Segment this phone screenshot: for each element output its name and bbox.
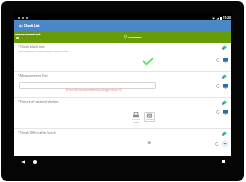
other: Edit <box>222 100 227 105</box>
button[interactable]: * <box>14 43 231 71</box>
staticText: General Checklist Test <box>15 33 41 36</box>
button[interactable]: Back <box>18 157 28 167</box>
button[interactable]: * <box>14 72 231 97</box>
other: History <box>216 84 220 88</box>
button[interactable]: History <box>215 57 221 63</box>
button[interactable]: * <box>14 98 231 128</box>
button[interactable]: Edit <box>221 130 227 136</box>
button[interactable]: Comments <box>222 57 228 63</box>
other: History <box>216 58 220 62</box>
other: Comments <box>223 110 228 115</box>
other: Edit <box>222 45 227 50</box>
staticText: Check List <box>24 24 40 28</box>
staticText: Picture of stocked shelves <box>20 100 59 104</box>
staticText: SD Card Photo <box>132 118 140 124</box>
button[interactable]: Edit <box>221 44 227 50</box>
staticText: * <box>18 131 20 135</box>
button[interactable]: Edit <box>221 99 227 105</box>
other: History <box>215 142 219 146</box>
staticText: * <box>18 100 20 104</box>
other: History <box>216 110 220 114</box>
button[interactable] <box>147 141 151 144</box>
button[interactable]: Home <box>30 157 40 167</box>
other: Edit <box>222 74 227 79</box>
staticText: Last changed by: Andrew Sample 11/09/15 … <box>18 50 68 53</box>
other: Comments <box>223 84 228 89</box>
staticText: Camera <box>146 118 154 121</box>
staticText: No location <box>128 35 142 38</box>
button[interactable]: Info <box>221 140 228 147</box>
button[interactable]: History <box>214 141 220 147</box>
button[interactable]: * <box>14 129 231 156</box>
button[interactable]: Camera <box>144 112 155 122</box>
other: Comments <box>223 58 228 63</box>
button[interactable]: History <box>215 109 221 115</box>
button[interactable]: Edit <box>221 73 227 79</box>
other: Info <box>222 141 228 147</box>
staticText: Error: the measurement is larger than 10 <box>66 88 122 92</box>
button[interactable]: History <box>215 83 221 89</box>
staticText: 11:24 <box>223 16 231 20</box>
button[interactable]: SD Card Photo <box>130 112 142 124</box>
button[interactable]: Comments <box>222 109 228 115</box>
staticText: * <box>18 74 20 78</box>
staticText: Check Office after lunch <box>20 131 56 135</box>
button[interactable]: Comments <box>222 83 228 89</box>
staticText: * <box>18 45 20 49</box>
other: Edit <box>222 131 227 136</box>
staticText: Measurement Test <box>20 74 48 78</box>
staticText: Check blank text <box>20 45 45 49</box>
button[interactable]: Back <box>16 20 25 31</box>
